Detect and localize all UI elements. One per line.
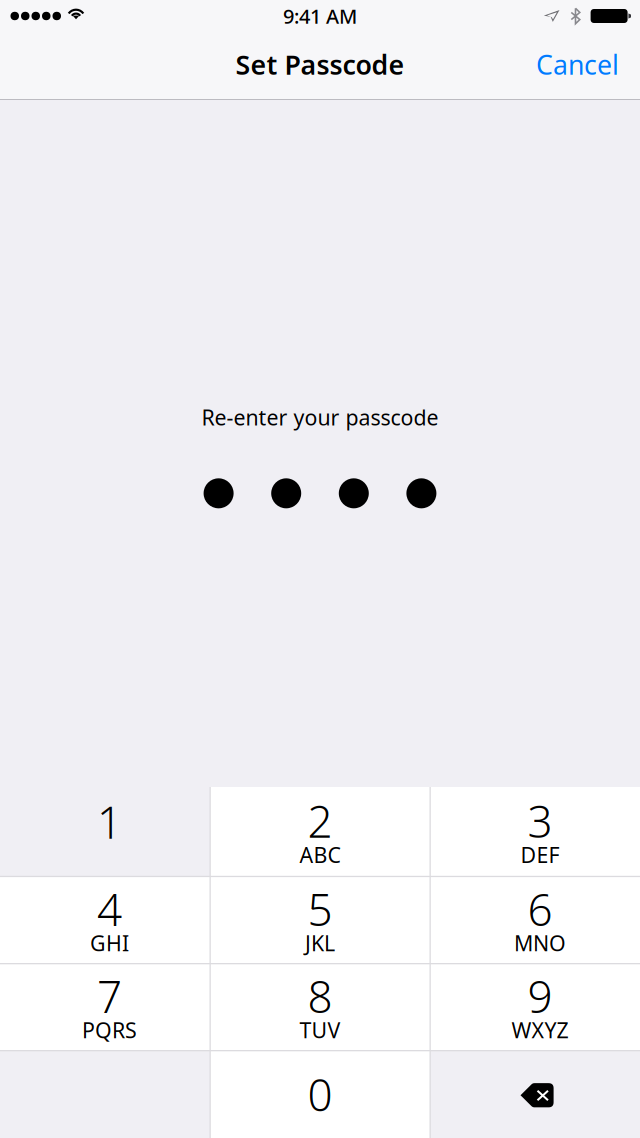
staticText: TUV <box>299 1016 340 1044</box>
staticText: 4 <box>97 880 122 938</box>
button[interactable]: Cancel <box>514 38 640 101</box>
staticText: MNO <box>514 929 566 957</box>
staticText: 5 <box>307 880 332 938</box>
staticText: ABC <box>299 841 340 869</box>
button[interactable]: 1 <box>0 787 210 876</box>
staticText: DEF <box>520 841 559 869</box>
button[interactable]: 5 <box>210 876 430 963</box>
button[interactable]: 3 <box>430 787 640 876</box>
staticText: JKL <box>305 929 335 957</box>
staticText: 6 <box>527 880 552 938</box>
staticText: 7 <box>97 967 122 1025</box>
staticText: Set Passcode <box>235 47 404 82</box>
button[interactable]: Delete <box>430 1050 640 1138</box>
staticText: 9:41 AM <box>283 3 357 29</box>
staticText: WXYZ <box>511 1016 568 1044</box>
button[interactable]: 0 <box>210 1050 430 1138</box>
button[interactable]: 2 <box>210 787 430 876</box>
button[interactable]: 4 <box>0 876 210 963</box>
staticText: PQRS <box>82 1016 137 1044</box>
button[interactable]: 6 <box>430 876 640 963</box>
staticText: Re-enter your passcode <box>201 403 438 431</box>
staticText: Cancel <box>536 47 619 82</box>
staticText: GHI <box>90 929 129 957</box>
button[interactable]: 9 <box>430 963 640 1050</box>
button[interactable]: 7 <box>0 963 210 1050</box>
staticText: 0 <box>307 1065 332 1123</box>
staticText: 2 <box>307 791 332 850</box>
staticText: 3 <box>527 791 552 850</box>
button[interactable]: 8 <box>210 963 430 1050</box>
staticText: 8 <box>307 967 332 1025</box>
staticText: 1 <box>97 792 122 851</box>
staticText: 9 <box>527 967 552 1025</box>
